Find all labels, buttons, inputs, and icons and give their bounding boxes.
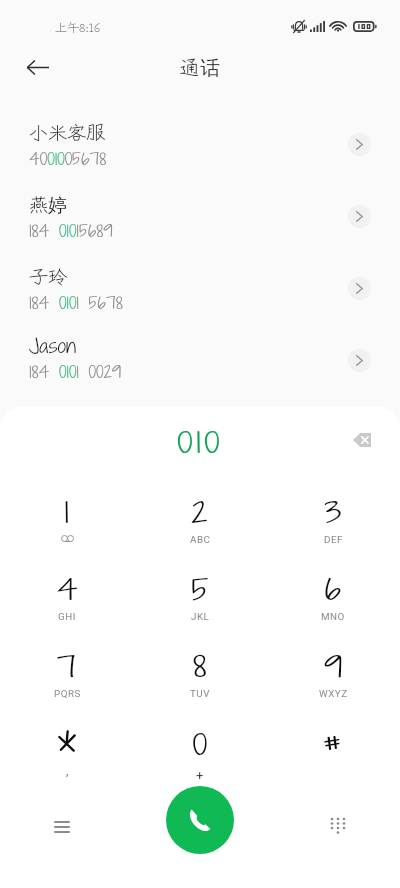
staticText: 184 01015689 [29, 220, 113, 242]
button[interactable]: Key 8 [156, 642, 244, 714]
staticText: 184 0101 0029 [29, 361, 122, 383]
staticText: 3 [324, 494, 342, 532]
button[interactable]: Key # [289, 720, 377, 792]
staticText: 7 [57, 648, 77, 686]
button[interactable]: Jason [0, 324, 400, 396]
staticText: Jason [29, 333, 77, 359]
staticText: GHI [58, 611, 76, 622]
staticText: JKL [191, 611, 210, 622]
button[interactable]: Call [166, 786, 234, 854]
staticText: TUV [190, 688, 210, 699]
button[interactable]: Key 9 [289, 642, 377, 714]
staticText: 5 [191, 571, 209, 609]
staticText: 0 [192, 726, 208, 764]
staticText: 010 [177, 424, 224, 462]
button[interactable]: Key 0 [156, 720, 244, 792]
staticText: 子玲 [29, 262, 68, 290]
staticText: ABC [190, 534, 211, 545]
button[interactable]: 燕婷 [0, 180, 400, 252]
staticText: 6 [324, 571, 342, 609]
button[interactable]: Key * [23, 720, 111, 792]
staticText: 燕婷 [29, 190, 68, 218]
staticText: , [66, 764, 69, 778]
staticText: 9 [324, 648, 343, 686]
staticText: WXYZ [319, 688, 348, 699]
staticText: 通话 [179, 52, 222, 81]
button[interactable]: Backspace [345, 423, 379, 457]
staticText: 上午8:16 [55, 18, 101, 35]
button[interactable]: 小米客服 [0, 108, 400, 180]
button[interactable]: Key 3 [289, 488, 377, 560]
button[interactable]: Dialpad [318, 807, 358, 847]
staticText: 小米客服 [29, 118, 106, 146]
button[interactable]: Key 6 [289, 565, 377, 637]
button[interactable]: Key 7 [23, 642, 111, 714]
staticText: 1 [64, 494, 70, 532]
staticText: DEF [324, 534, 343, 545]
staticText: 184 0101 5678 [29, 292, 124, 314]
staticText: 2 [191, 494, 209, 532]
button[interactable]: Key 1 [23, 488, 111, 560]
staticText: # [321, 726, 345, 764]
staticText: + [196, 768, 204, 783]
staticText: MNO [321, 611, 345, 622]
button[interactable]: Call log [42, 807, 82, 847]
button[interactable]: Back [18, 47, 58, 87]
staticText: 4 [57, 571, 78, 609]
button[interactable]: Key 4 [23, 565, 111, 637]
staticText: 8 [193, 648, 207, 686]
staticText: PQRS [54, 688, 81, 699]
staticText: 4001005678 [29, 148, 107, 170]
button[interactable]: 子玲 [0, 252, 400, 324]
button[interactable]: Key 5 [156, 565, 244, 637]
button[interactable]: Key 2 [156, 488, 244, 560]
